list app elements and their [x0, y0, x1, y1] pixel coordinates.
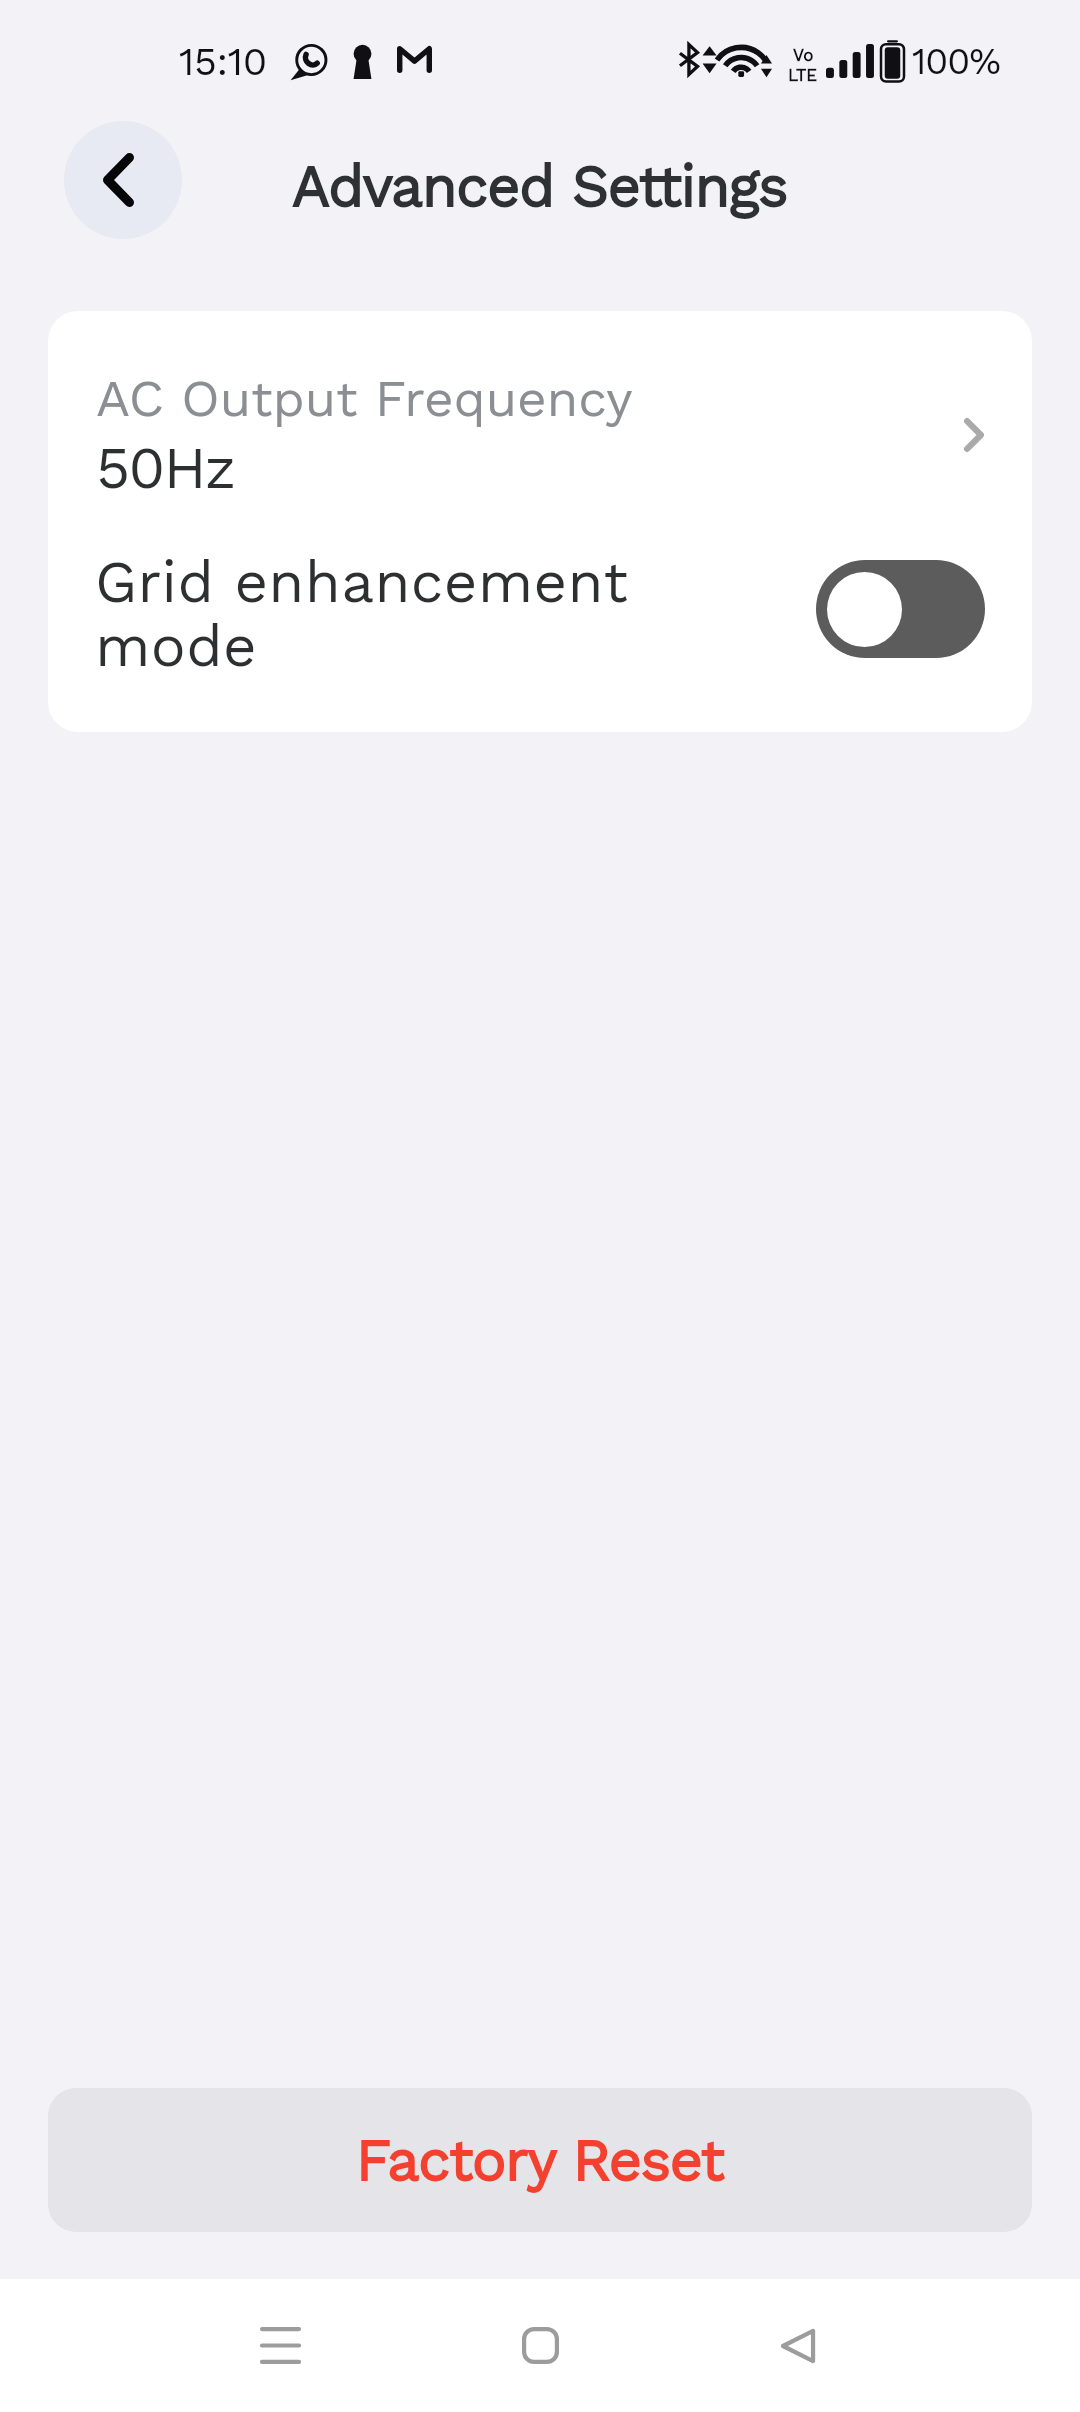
- button[interactable]: AC Output Frequency: [48, 311, 1032, 511]
- staticText: LTE: [788, 65, 818, 85]
- staticText: AC Output Frequency: [96, 368, 633, 428]
- button[interactable]: Recent apps: [180, 2279, 380, 2412]
- staticText: 15:10: [179, 38, 267, 84]
- staticText: 100%: [912, 40, 1000, 83]
- button[interactable]: Back: [698, 2279, 898, 2412]
- staticText: Grid enhancement mode: [95, 548, 629, 680]
- button[interactable]: Home: [440, 2279, 640, 2412]
- staticText: Factory Reset: [356, 2126, 724, 2194]
- button[interactable]: Grid enhancement mode: [48, 511, 1032, 732]
- staticText: Vo: [793, 45, 814, 65]
- button[interactable]: Factory Reset: [48, 2088, 1032, 2232]
- button[interactable]: Grid enhancement mode: [816, 560, 985, 658]
- staticText: Advanced Settings: [292, 152, 788, 220]
- button[interactable]: Back: [64, 121, 182, 239]
- staticText: 50Hz: [96, 433, 235, 502]
